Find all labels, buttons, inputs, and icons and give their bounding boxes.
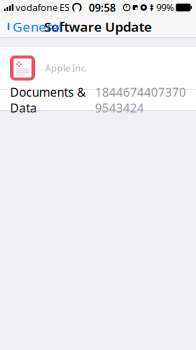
button[interactable]: Documents & Data	[0, 89, 196, 110]
staticText: vodafone ES	[15, 1, 69, 14]
button[interactable]: General	[0, 14, 61, 39]
staticText: 99%	[156, 1, 174, 14]
staticText: Software Update	[44, 18, 152, 35]
button[interactable]: Apple Inc.	[0, 47, 196, 89]
staticText: Apple Inc.	[45, 62, 88, 74]
staticText: Documents & Data	[10, 84, 86, 116]
staticText: 09:58	[89, 0, 116, 15]
staticText: 18446744073709543424	[95, 84, 186, 116]
staticText: General	[12, 18, 61, 35]
